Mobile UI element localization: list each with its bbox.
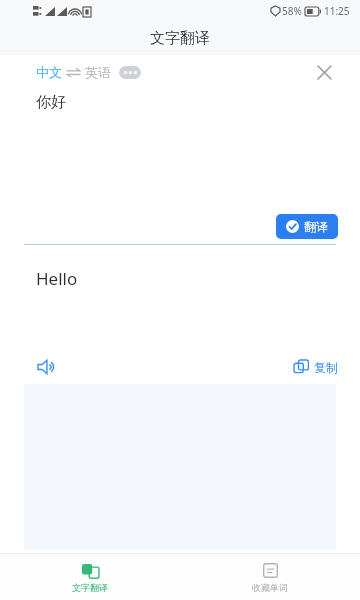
staticText: 11:25 [324,4,350,18]
button[interactable]: 翻译 [276,214,338,239]
staticText: 收藏单词 [252,582,288,593]
button[interactable]: Play audio [32,352,62,382]
staticText: 翻译 [304,219,328,234]
staticText: 中文 [36,64,62,80]
staticText: 英语 [85,64,111,80]
button[interactable]: 复制 [294,360,338,375]
staticText: 你好 [36,93,66,112]
button[interactable]: Close [310,58,338,86]
staticText: 文字翻译 [150,29,210,48]
staticText: Hello [36,267,78,290]
staticText: 复制 [314,360,338,375]
button[interactable]: 文字翻译 [0,554,180,600]
button[interactable]: 中文 [36,64,141,80]
staticText: 58% [282,4,302,18]
staticText: 文字翻译 [72,582,108,593]
button[interactable]: 收藏单词 [180,554,360,600]
